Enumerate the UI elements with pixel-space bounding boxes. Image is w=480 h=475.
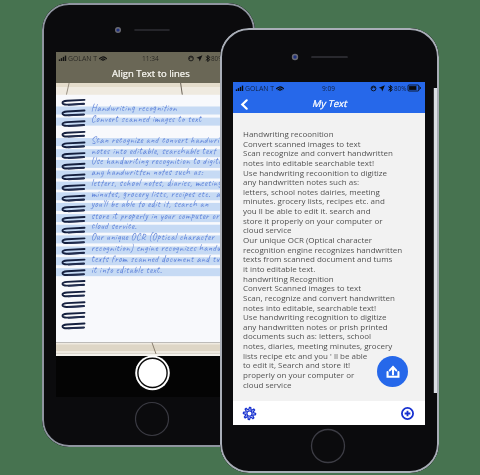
- staticText: Scan recognize and convert handwritt: [91, 134, 227, 146]
- staticText: recognition engine recognizes handwritte…: [243, 244, 403, 255]
- staticText: cloud service: [243, 224, 292, 235]
- staticText: Convert scanned images to text: [243, 138, 361, 149]
- staticText: Use handwriting recognition to digitize: [91, 155, 228, 167]
- staticText: any handwritten notes such as:: [91, 166, 203, 178]
- staticText: letters, school notes dairies, meeting: [243, 186, 380, 197]
- staticText: notes into editable, searchable text: [91, 145, 216, 157]
- staticText: notes into editable, searchable text!: [243, 302, 377, 313]
- staticText: Use handwriting recoonition to digitize: [243, 167, 387, 178]
- button[interactable]: Back: [237, 97, 251, 111]
- staticText: Convert Scanned images to text: [243, 282, 362, 293]
- staticText: minutes. grocery lists, recipes etc. and: [243, 195, 385, 206]
- staticText: documents such as: letters, school: [243, 330, 372, 341]
- staticText: you ll be able to edit it. search and: [243, 205, 371, 216]
- staticText: lists recipe etc and you ' ll be able: [243, 350, 368, 361]
- staticText: 11:34: [142, 54, 159, 63]
- staticText: Align Text to lines: [112, 67, 190, 80]
- staticText: store it properly on your computer or: [243, 215, 383, 226]
- staticText: properly on your computer or: [243, 369, 355, 380]
- staticText: to edit it, Search and store it!: [243, 359, 351, 370]
- staticText: Our unique OCR (Optical character: [243, 234, 373, 245]
- staticText: store it properly in your computer or: [91, 210, 220, 222]
- staticText: handwriting Recognition: [243, 273, 334, 284]
- staticText: notes into editable searchable text!: [243, 157, 374, 168]
- staticText: minutes, grocery lists, recipes etc. a: [91, 188, 221, 200]
- button[interactable]: Upload: [377, 356, 408, 387]
- staticText: cloud service: [243, 379, 292, 390]
- staticText: it into editable text.: [243, 263, 316, 274]
- staticText: any handwritten notes or prish printed: [243, 321, 388, 332]
- staticText: texts from scanned document and tums: [243, 253, 393, 264]
- staticText: Handwriting recognition: [91, 102, 177, 114]
- staticText: Our unique OCR (Optical character: [91, 231, 215, 243]
- button[interactable]: Settings: [240, 404, 258, 422]
- staticText: Use handwriting recognition to digitize: [243, 311, 387, 322]
- staticText: Scan recognize and convert handwritten: [243, 147, 393, 158]
- staticText: notes, diaries, meeting minutes, grocery: [243, 340, 393, 351]
- staticText: 80%: [394, 84, 407, 93]
- staticText: Handwriting recoonition: [243, 128, 334, 139]
- staticText: 9:09: [322, 84, 336, 93]
- staticText: GOLAN T: [245, 84, 275, 93]
- staticText: recognition) engine recognizes handwritt: [91, 242, 235, 254]
- staticText: Convert scanned images to text: [91, 113, 202, 125]
- staticText: GOLAN T: [68, 54, 98, 63]
- staticText: texts from scanned document and tu: [91, 253, 220, 265]
- staticText: it into editable text.: [91, 264, 163, 276]
- staticText: cloud service.: [91, 220, 137, 232]
- staticText: you'll be able to edit it, search an: [91, 198, 209, 210]
- staticText: My Text: [312, 97, 347, 110]
- staticText: letters, school notes, diaries, meeting: [91, 177, 222, 189]
- staticText: 80%: [211, 54, 224, 63]
- staticText: Scan, recognize and convert handwritten: [243, 292, 396, 303]
- staticText: any handwritten notes such as:: [243, 176, 360, 187]
- button[interactable]: Add: [398, 404, 416, 422]
